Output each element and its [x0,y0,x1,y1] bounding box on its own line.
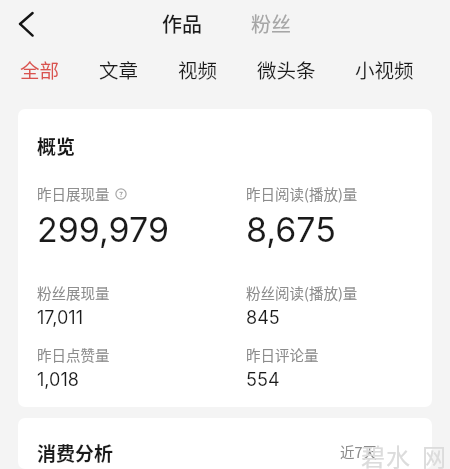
staticText: 17,011 [37,307,83,329]
button[interactable]: 全部 [20,55,60,83]
button[interactable]: 视频 [178,55,218,83]
staticText: 碧 [361,438,385,469]
staticText: 1,018 [37,369,79,391]
staticText: 昨日阅读(播放)量 [246,183,358,204]
staticText: 845 [246,307,280,329]
staticText: 小视频 [355,55,414,83]
staticText: 8,675 [246,209,336,250]
staticText: 粉丝 [251,9,291,38]
staticText: 昨日评论量 [246,344,319,365]
button[interactable]: 文章 [99,55,139,83]
staticText: 微头条 [257,55,316,83]
staticText: 近7天 [340,441,378,462]
button[interactable]: 近7天 [340,441,378,462]
staticText: 概览 [37,132,76,160]
staticText: 消费分析 [37,439,114,467]
staticText: 299,979 [37,209,170,250]
staticText: 554 [246,369,280,391]
button[interactable]: Back [9,5,45,41]
staticText: 粉丝展现量 [37,282,110,303]
staticText: 文章 [99,55,139,83]
button[interactable]: 微头条 [257,55,316,83]
staticText: 昨日点赞量 [37,344,110,365]
staticText: 视频 [178,55,218,83]
staticText: 全部 [20,55,60,83]
staticText: 水 [386,438,410,469]
button[interactable]: 作品 [162,9,202,38]
button[interactable]: 粉丝 [251,9,291,38]
staticText: 作品 [162,9,202,38]
staticText: 粉丝阅读(播放)量 [246,282,358,303]
button[interactable]: 小视频 [355,55,414,83]
staticText: 网 [422,438,446,469]
staticText: 昨日展现量 [37,183,110,204]
